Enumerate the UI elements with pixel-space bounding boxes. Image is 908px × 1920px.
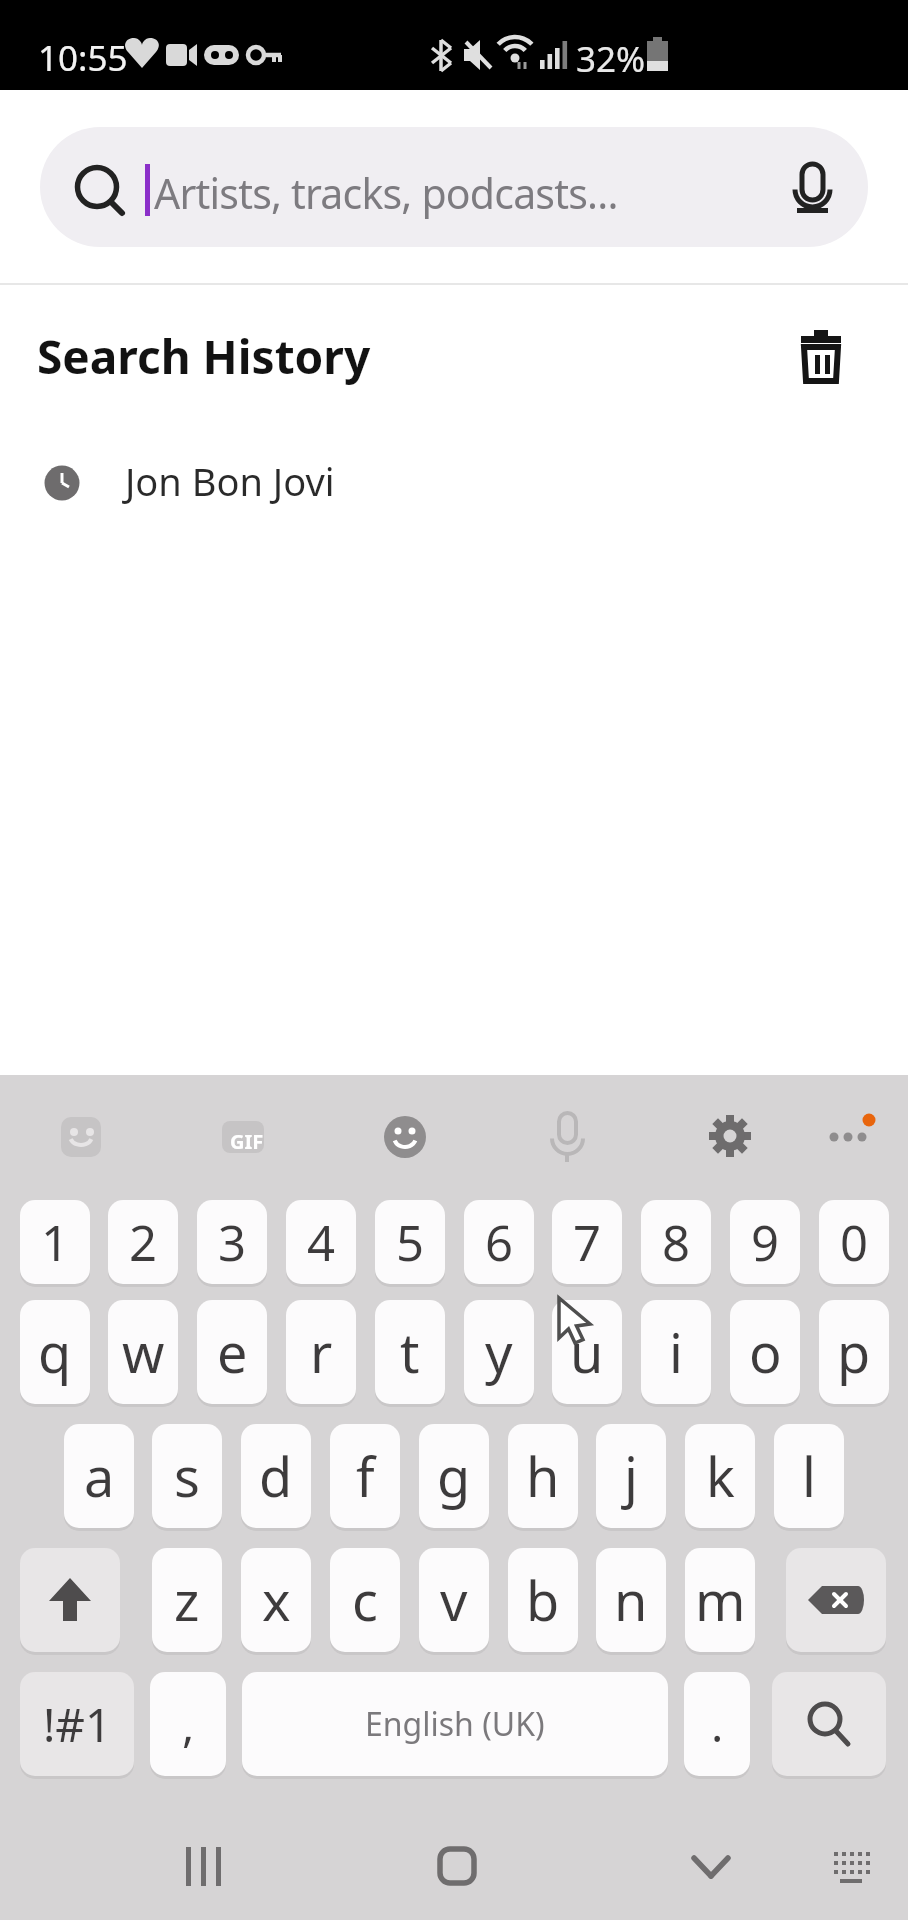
button[interactable]: f bbox=[330, 1424, 400, 1528]
button[interactable]: b bbox=[508, 1548, 578, 1652]
staticText: GIF bbox=[230, 1128, 264, 1155]
button[interactable]: q bbox=[20, 1300, 90, 1404]
button[interactable]: . bbox=[684, 1672, 750, 1776]
button[interactable] bbox=[410, 1830, 510, 1905]
staticText: 6 bbox=[485, 1209, 514, 1276]
staticText: 32% bbox=[576, 35, 646, 83]
staticText: h bbox=[526, 1439, 560, 1513]
button[interactable]: p bbox=[819, 1300, 889, 1404]
staticText: c bbox=[352, 1563, 378, 1637]
button[interactable]: !#1 bbox=[20, 1672, 134, 1776]
staticText: a bbox=[84, 1439, 115, 1513]
staticText: x bbox=[262, 1563, 291, 1637]
button[interactable] bbox=[695, 1102, 765, 1172]
staticText: s bbox=[174, 1439, 200, 1513]
button[interactable]: 2 bbox=[108, 1200, 178, 1284]
button[interactable] bbox=[40, 127, 868, 247]
button[interactable] bbox=[670, 1830, 770, 1905]
staticText: y bbox=[485, 1315, 513, 1389]
button[interactable]: m bbox=[685, 1548, 755, 1652]
button[interactable]: Jon Bon Jovi bbox=[20, 440, 888, 516]
staticText: Jon Bon Jovi bbox=[125, 455, 335, 507]
button[interactable]: , bbox=[150, 1672, 226, 1776]
button[interactable] bbox=[786, 1548, 886, 1652]
button[interactable]: a bbox=[64, 1424, 134, 1528]
staticText: t bbox=[400, 1315, 420, 1389]
button[interactable] bbox=[208, 1102, 278, 1172]
staticText: 2 bbox=[129, 1209, 158, 1276]
staticText: d bbox=[259, 1439, 293, 1513]
button[interactable] bbox=[532, 1102, 602, 1172]
staticText: 7 bbox=[573, 1209, 602, 1276]
staticText: 3 bbox=[218, 1209, 247, 1276]
button[interactable]: t bbox=[375, 1300, 445, 1404]
staticText: q bbox=[38, 1315, 72, 1389]
staticText: . bbox=[711, 1693, 724, 1756]
staticText: p bbox=[837, 1315, 871, 1389]
button[interactable]: n bbox=[596, 1548, 666, 1652]
button[interactable]: x bbox=[241, 1548, 311, 1652]
staticText: k bbox=[706, 1439, 735, 1513]
button[interactable] bbox=[813, 1102, 883, 1172]
button[interactable]: j bbox=[596, 1424, 666, 1528]
button[interactable]: v bbox=[419, 1548, 489, 1652]
button[interactable]: g bbox=[419, 1424, 489, 1528]
button[interactable]: 6 bbox=[464, 1200, 534, 1284]
staticText: g bbox=[437, 1439, 471, 1513]
staticText: Search History bbox=[37, 325, 371, 388]
staticText: w bbox=[122, 1315, 165, 1389]
staticText: v bbox=[440, 1563, 468, 1637]
button[interactable]: o bbox=[730, 1300, 800, 1404]
button[interactable]: r bbox=[286, 1300, 356, 1404]
button[interactable]: 1 bbox=[20, 1200, 90, 1284]
button[interactable] bbox=[370, 1102, 440, 1172]
staticText: , bbox=[182, 1693, 195, 1756]
staticText: 5 bbox=[396, 1209, 425, 1276]
staticText: 10:55 bbox=[38, 34, 128, 82]
staticText: u bbox=[570, 1315, 604, 1389]
staticText: English (UK) bbox=[365, 1702, 545, 1746]
staticText: i bbox=[669, 1315, 683, 1389]
staticText: l bbox=[802, 1439, 816, 1513]
staticText: r bbox=[310, 1315, 333, 1389]
staticText: o bbox=[749, 1315, 782, 1389]
button[interactable]: k bbox=[685, 1424, 755, 1528]
button[interactable] bbox=[20, 1548, 120, 1652]
staticText: z bbox=[174, 1563, 200, 1637]
button[interactable]: h bbox=[508, 1424, 578, 1528]
button[interactable]: 4 bbox=[286, 1200, 356, 1284]
staticText: m bbox=[695, 1563, 746, 1637]
staticText: 8 bbox=[662, 1209, 691, 1276]
button[interactable] bbox=[790, 325, 850, 391]
staticText: 4 bbox=[307, 1209, 336, 1276]
button[interactable]: l bbox=[774, 1424, 844, 1528]
staticText: Artists, tracks, podcasts... bbox=[154, 165, 618, 221]
button[interactable]: u bbox=[552, 1300, 622, 1404]
button[interactable]: 0 bbox=[819, 1200, 889, 1284]
button[interactable]: 7 bbox=[552, 1200, 622, 1284]
button[interactable]: English (UK) bbox=[242, 1672, 668, 1776]
button[interactable] bbox=[772, 1672, 886, 1776]
button[interactable]: w bbox=[108, 1300, 178, 1404]
button[interactable]: e bbox=[197, 1300, 267, 1404]
button[interactable] bbox=[150, 1830, 260, 1905]
staticText: f bbox=[356, 1439, 375, 1513]
button[interactable]: 5 bbox=[375, 1200, 445, 1284]
button[interactable] bbox=[46, 1102, 116, 1172]
staticText: 0 bbox=[840, 1209, 869, 1276]
button[interactable]: 9 bbox=[730, 1200, 800, 1284]
staticText: !#1 bbox=[43, 1693, 112, 1756]
button[interactable] bbox=[780, 152, 846, 224]
staticText: 1 bbox=[41, 1209, 70, 1276]
button[interactable]: i bbox=[641, 1300, 711, 1404]
button[interactable]: d bbox=[241, 1424, 311, 1528]
button[interactable]: 3 bbox=[197, 1200, 267, 1284]
button[interactable]: c bbox=[330, 1548, 400, 1652]
staticText: e bbox=[217, 1315, 248, 1389]
staticText: n bbox=[614, 1563, 648, 1637]
button[interactable]: z bbox=[152, 1548, 222, 1652]
button[interactable]: s bbox=[152, 1424, 222, 1528]
button[interactable]: y bbox=[464, 1300, 534, 1404]
staticText: b bbox=[526, 1563, 560, 1637]
button[interactable]: 8 bbox=[641, 1200, 711, 1284]
